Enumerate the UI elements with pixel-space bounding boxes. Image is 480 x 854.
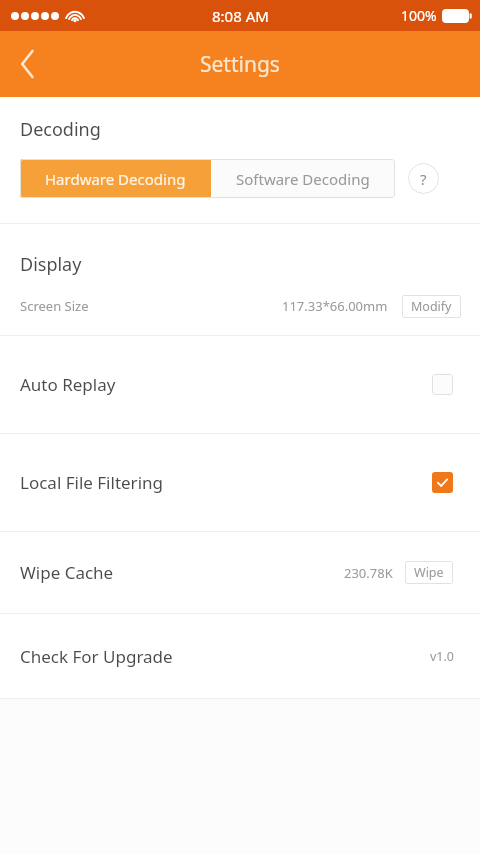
button[interactable]: Check For Upgrade xyxy=(0,614,480,698)
staticText: Wipe xyxy=(414,564,444,581)
button[interactable]: Software Decoding xyxy=(211,159,395,198)
button[interactable]: Wipe Cache xyxy=(0,532,480,613)
staticText: Decoding xyxy=(20,117,101,142)
staticText: ? xyxy=(420,169,427,189)
button[interactable]: Local File Filtering xyxy=(0,434,480,531)
staticText: Wipe Cache xyxy=(20,561,114,584)
staticText: 117.33*66.00mm xyxy=(282,297,388,315)
button[interactable]: Back xyxy=(0,36,56,92)
button[interactable]: Hardware Decoding xyxy=(20,159,211,198)
button[interactable]: Wipe xyxy=(405,561,453,584)
staticText: Local File Filtering xyxy=(20,471,163,494)
button[interactable]: Screen Size xyxy=(0,291,480,321)
staticText: v1.0 xyxy=(430,648,455,665)
staticText: Screen Size xyxy=(20,297,89,315)
staticText: Check For Upgrade xyxy=(20,645,173,668)
staticText: Modify xyxy=(411,298,452,315)
button[interactable]: Auto Replay xyxy=(0,336,480,433)
staticText: Hardware Decoding xyxy=(45,169,186,189)
button[interactable]: Modify xyxy=(402,295,461,318)
staticText: Auto Replay xyxy=(20,373,116,396)
staticText: 8:08 AM xyxy=(212,6,269,26)
staticText: Settings xyxy=(200,50,280,79)
staticText: 230.78K xyxy=(344,564,393,582)
staticText: 100% xyxy=(401,6,437,25)
staticText: Display xyxy=(20,252,82,277)
button[interactable]: Help xyxy=(408,163,439,194)
staticText: Software Decoding xyxy=(236,169,370,189)
